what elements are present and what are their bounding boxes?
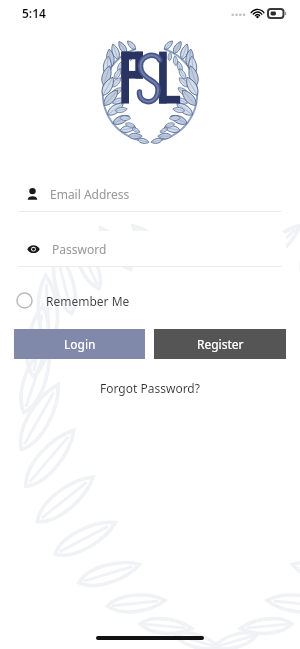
staticText: 5:14 xyxy=(22,5,46,21)
staticText: Remember Me xyxy=(46,293,130,309)
button[interactable]: Password xyxy=(14,231,286,267)
button[interactable]: Forgot Password? xyxy=(92,376,208,400)
button[interactable]: Register xyxy=(154,329,286,359)
staticText: Login xyxy=(64,336,96,352)
button[interactable]: Login xyxy=(14,329,145,359)
button[interactable]: Email Address xyxy=(14,176,286,212)
button[interactable]: Remember Me xyxy=(14,288,132,313)
staticText: Email Address xyxy=(50,186,130,202)
staticText: Password xyxy=(52,241,107,257)
staticText: Register xyxy=(197,336,244,352)
